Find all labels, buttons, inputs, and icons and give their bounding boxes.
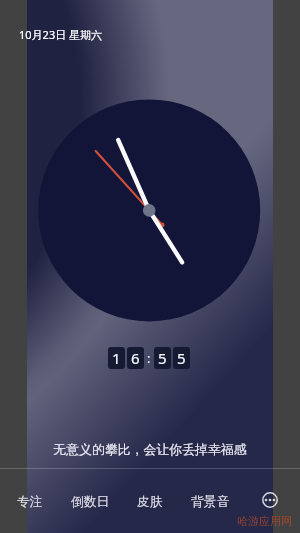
staticText: 皮肤 <box>137 494 163 510</box>
staticText: 哈游应用网 <box>237 514 292 528</box>
staticText: 5 <box>177 348 186 368</box>
staticText: 倒数日 <box>71 494 110 510</box>
button[interactable]: 背景音 <box>180 469 240 533</box>
staticText: : <box>147 349 151 367</box>
staticText: 背景音 <box>191 494 230 510</box>
staticText: 6 <box>131 348 140 368</box>
button[interactable]: 专注 <box>0 469 60 533</box>
staticText: 无意义的攀比，会让你丢掉幸福感 <box>0 442 300 458</box>
staticText: 专注 <box>17 494 43 510</box>
button[interactable]: More options <box>240 469 300 533</box>
staticText: 10月23日 星期六 <box>19 27 103 42</box>
button[interactable]: 皮肤 <box>120 469 180 533</box>
staticText: 1 <box>112 348 121 368</box>
button[interactable]: 倒数日 <box>60 469 120 533</box>
staticText: 5 <box>158 348 167 368</box>
